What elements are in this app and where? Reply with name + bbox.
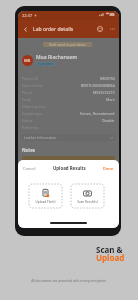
staticText: Status bbox=[22, 118, 33, 123]
staticText: Date of birth bbox=[22, 83, 43, 88]
staticText: Scan & bbox=[96, 244, 123, 255]
staticText: Sample type bbox=[22, 111, 43, 116]
staticText: NR39702 bbox=[100, 76, 115, 81]
button[interactable]: Upload File(s) bbox=[29, 184, 62, 208]
button[interactable]: Back bbox=[20, 24, 31, 35]
staticText: Disable bbox=[102, 118, 115, 123]
staticText: All documents are protected with strong … bbox=[0, 279, 138, 283]
staticText: Upload bbox=[96, 252, 125, 263]
button[interactable]: Help bbox=[95, 24, 105, 34]
button[interactable]: Scan Result(s) bbox=[71, 184, 104, 208]
staticText: More bbox=[106, 97, 115, 102]
staticText: Draft saved to your device bbox=[49, 43, 86, 47]
staticText: Lab order details bbox=[33, 26, 74, 33]
staticText: Notes bbox=[22, 147, 36, 153]
staticText: Ordering clinic bbox=[22, 104, 47, 109]
staticText: 22:37 bbox=[22, 13, 33, 18]
staticText: Upload File(s) bbox=[35, 200, 56, 204]
staticText: Mua Riachanaem bbox=[36, 54, 78, 61]
staticText: BIRTH-RGVXDEBBEA bbox=[81, 83, 115, 88]
staticText: MX33V23219 bbox=[93, 90, 115, 95]
staticText: Scan Result(s) bbox=[77, 200, 98, 204]
staticText: Patient ID bbox=[22, 76, 39, 81]
staticText: Serum, Recentenced bbox=[80, 111, 115, 116]
button[interactable]: Done bbox=[103, 166, 114, 171]
staticText: Phone bbox=[22, 90, 33, 95]
staticText: Email bbox=[22, 97, 31, 102]
staticText: Reference bbox=[22, 125, 39, 130]
staticText: In progress bbox=[38, 62, 53, 66]
button[interactable]: More options bbox=[108, 25, 116, 33]
staticText: Leather Information bbox=[24, 135, 57, 140]
staticText: Upload Results bbox=[53, 165, 86, 171]
staticText: MR bbox=[24, 58, 31, 63]
button[interactable]: Cancel bbox=[23, 166, 36, 171]
